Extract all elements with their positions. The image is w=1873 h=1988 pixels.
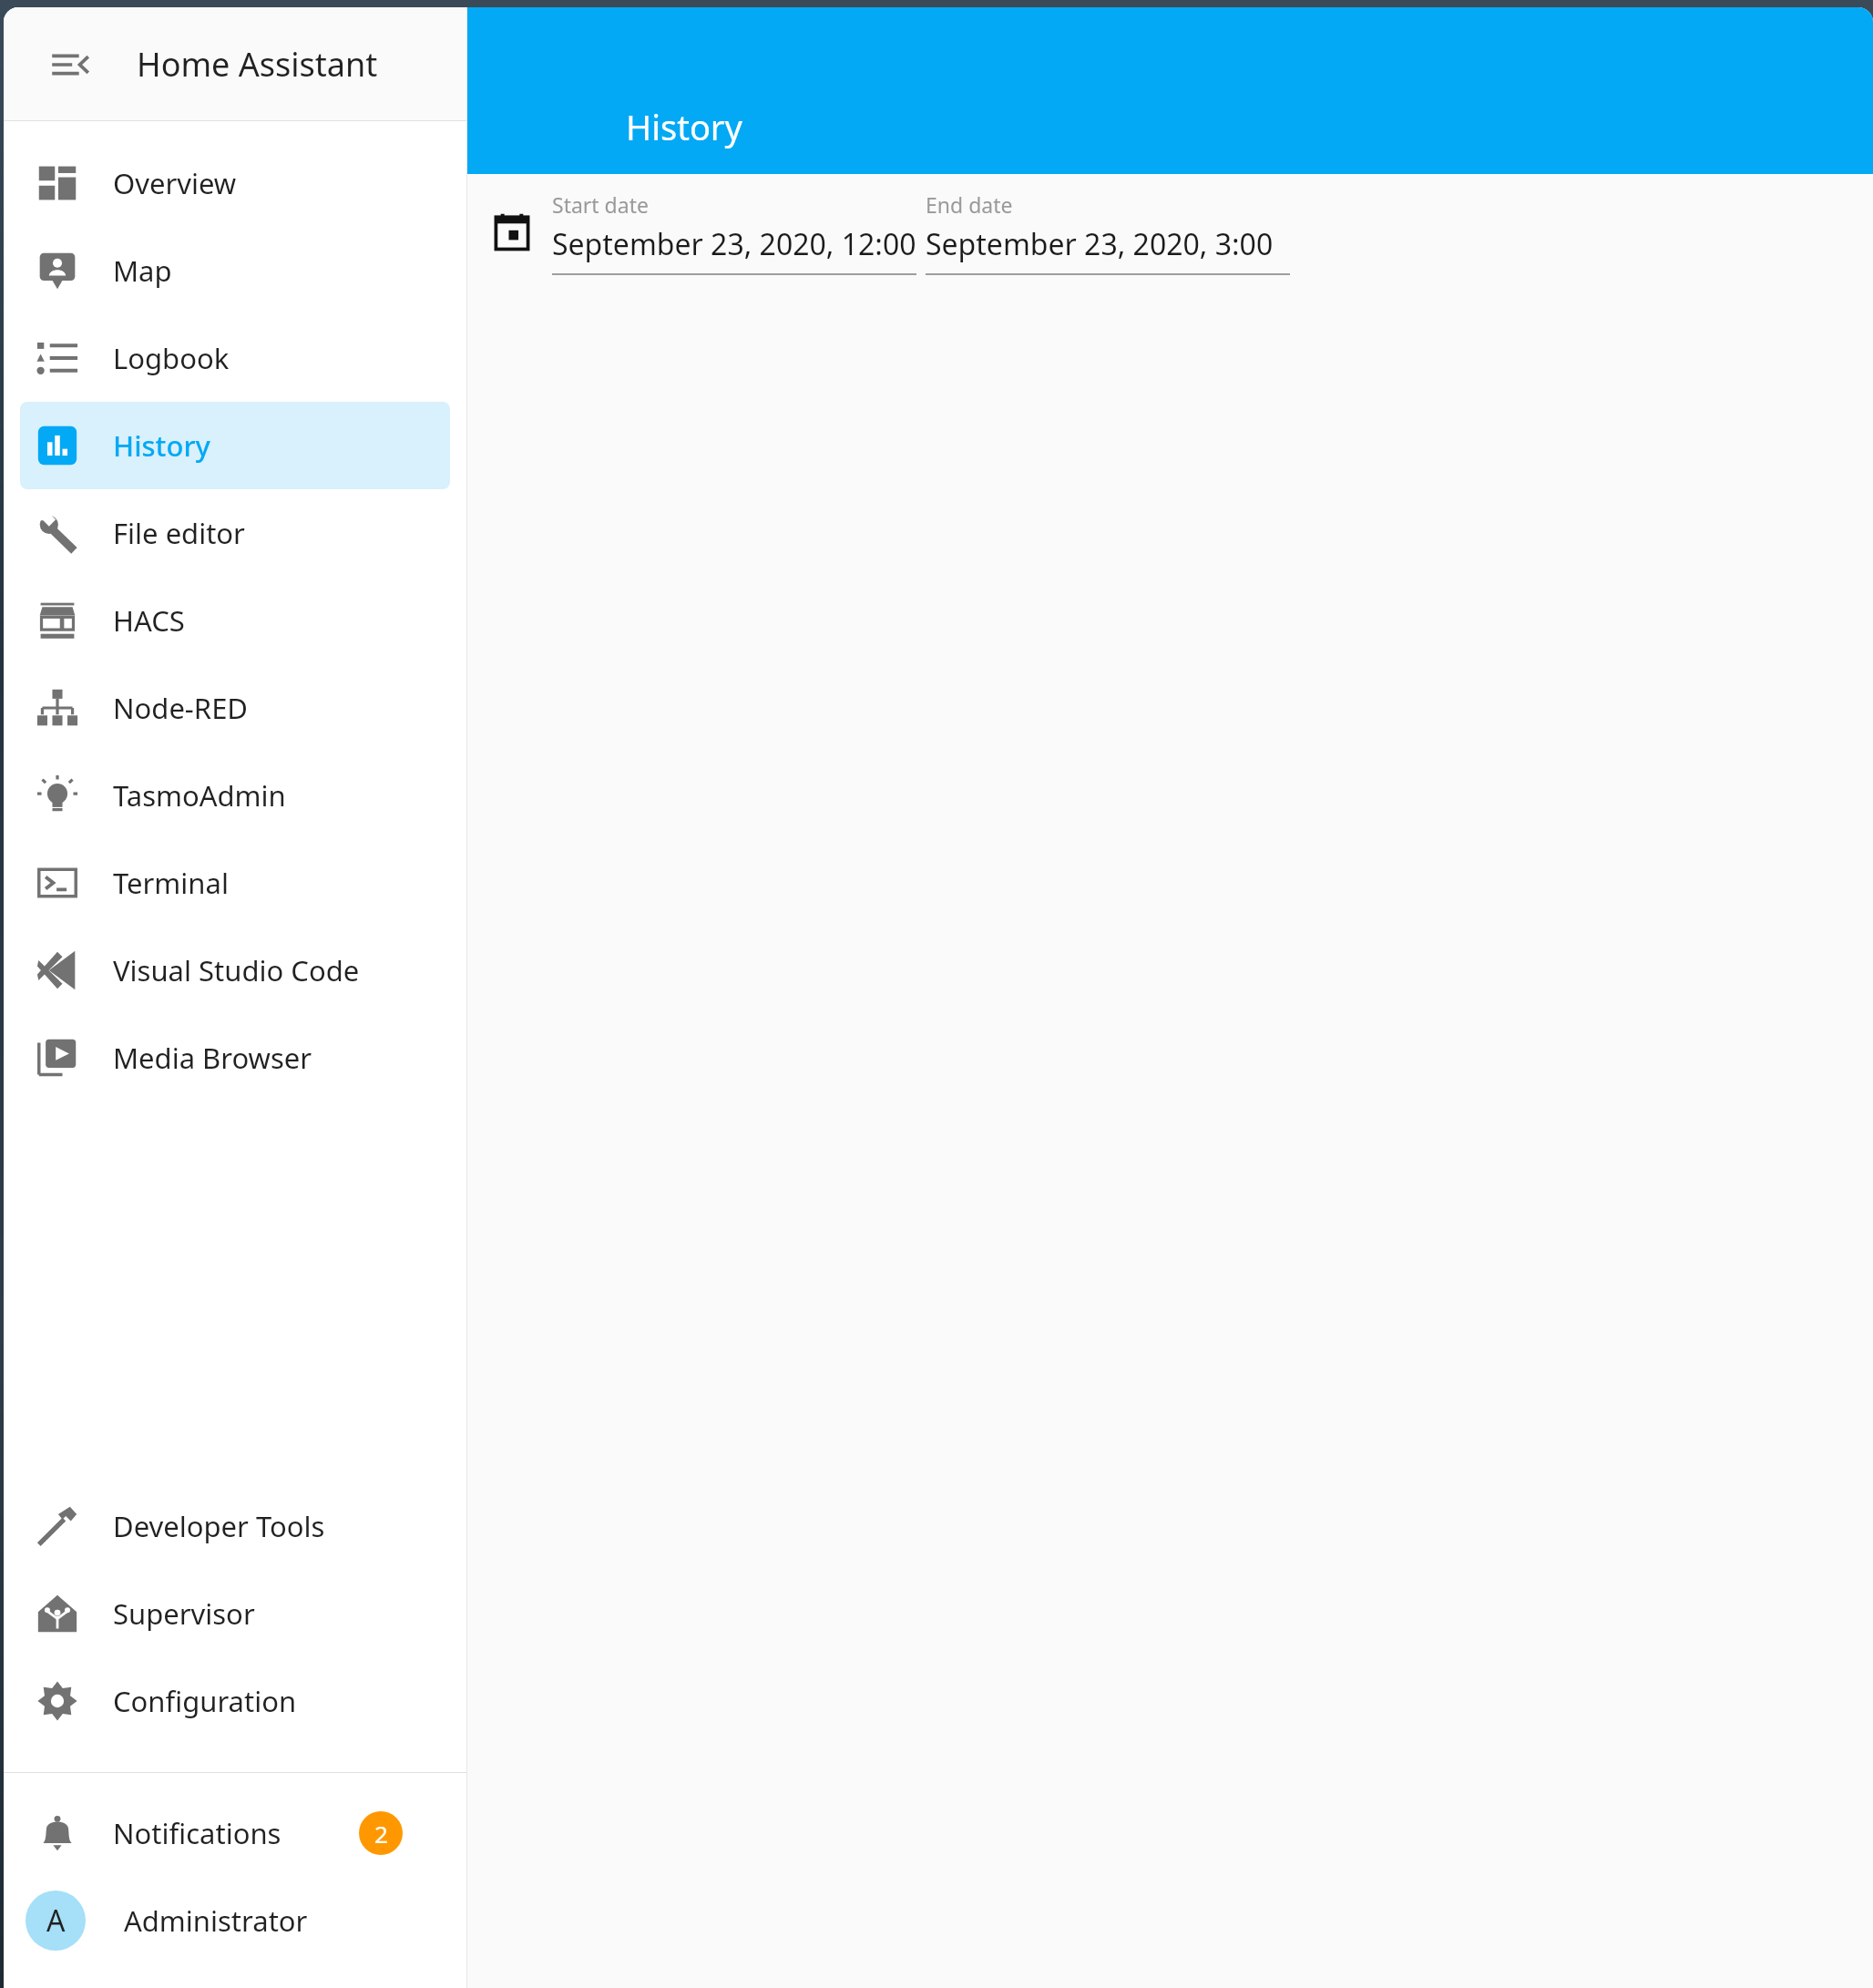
button[interactable]: Supervisor [20, 1570, 450, 1657]
button[interactable]: Node-RED [20, 664, 450, 752]
staticText: September 23, 2020, 3:00 PM [926, 224, 1290, 264]
staticText: 2 [374, 1818, 388, 1850]
button[interactable]: Toggle sidebar [40, 35, 100, 95]
staticText: File editor [113, 514, 245, 552]
staticText: Administrator [124, 1901, 308, 1940]
button[interactable]: File editor [20, 489, 450, 577]
staticText: Visual Studio Code [113, 951, 360, 989]
staticText: Developer Tools [113, 1507, 325, 1545]
staticText: Notifications [113, 1814, 281, 1852]
button[interactable]: TasmoAdmin [20, 752, 450, 839]
button[interactable]: Map [20, 227, 450, 314]
staticText: Node-RED [113, 689, 248, 727]
staticText: HACS [113, 601, 185, 640]
button[interactable]: Visual Studio Code [20, 927, 450, 1014]
staticText: Logbook [113, 339, 230, 377]
button[interactable]: Terminal [20, 839, 450, 927]
staticText: End date [926, 190, 1013, 219]
staticText: Map [113, 251, 172, 290]
staticText: History [113, 426, 210, 465]
button[interactable]: Notifications [20, 1789, 450, 1877]
button[interactable]: Overview [20, 139, 450, 227]
button[interactable]: History [20, 402, 450, 489]
staticText: Overview [113, 164, 237, 202]
button[interactable]: HACS [20, 577, 450, 664]
other: Calendar [492, 212, 532, 252]
staticText: History [626, 103, 742, 150]
button[interactable]: Configuration [20, 1657, 450, 1745]
staticText: Configuration [113, 1682, 297, 1720]
staticText: TasmoAdmin [113, 776, 286, 815]
staticText: A [46, 1901, 66, 1941]
button[interactable]: Media Browser [20, 1014, 450, 1102]
staticText: September 23, 2020, 12:00 P [552, 224, 916, 264]
staticText: Supervisor [113, 1594, 255, 1633]
staticText: Start date [552, 190, 649, 219]
staticText: Home Assistant [137, 42, 378, 87]
button[interactable]: Logbook [20, 314, 450, 402]
button[interactable]: A [4, 1877, 466, 1964]
staticText: Terminal [113, 864, 229, 902]
staticText: Media Browser [113, 1039, 312, 1077]
button[interactable]: Developer Tools [20, 1482, 450, 1570]
